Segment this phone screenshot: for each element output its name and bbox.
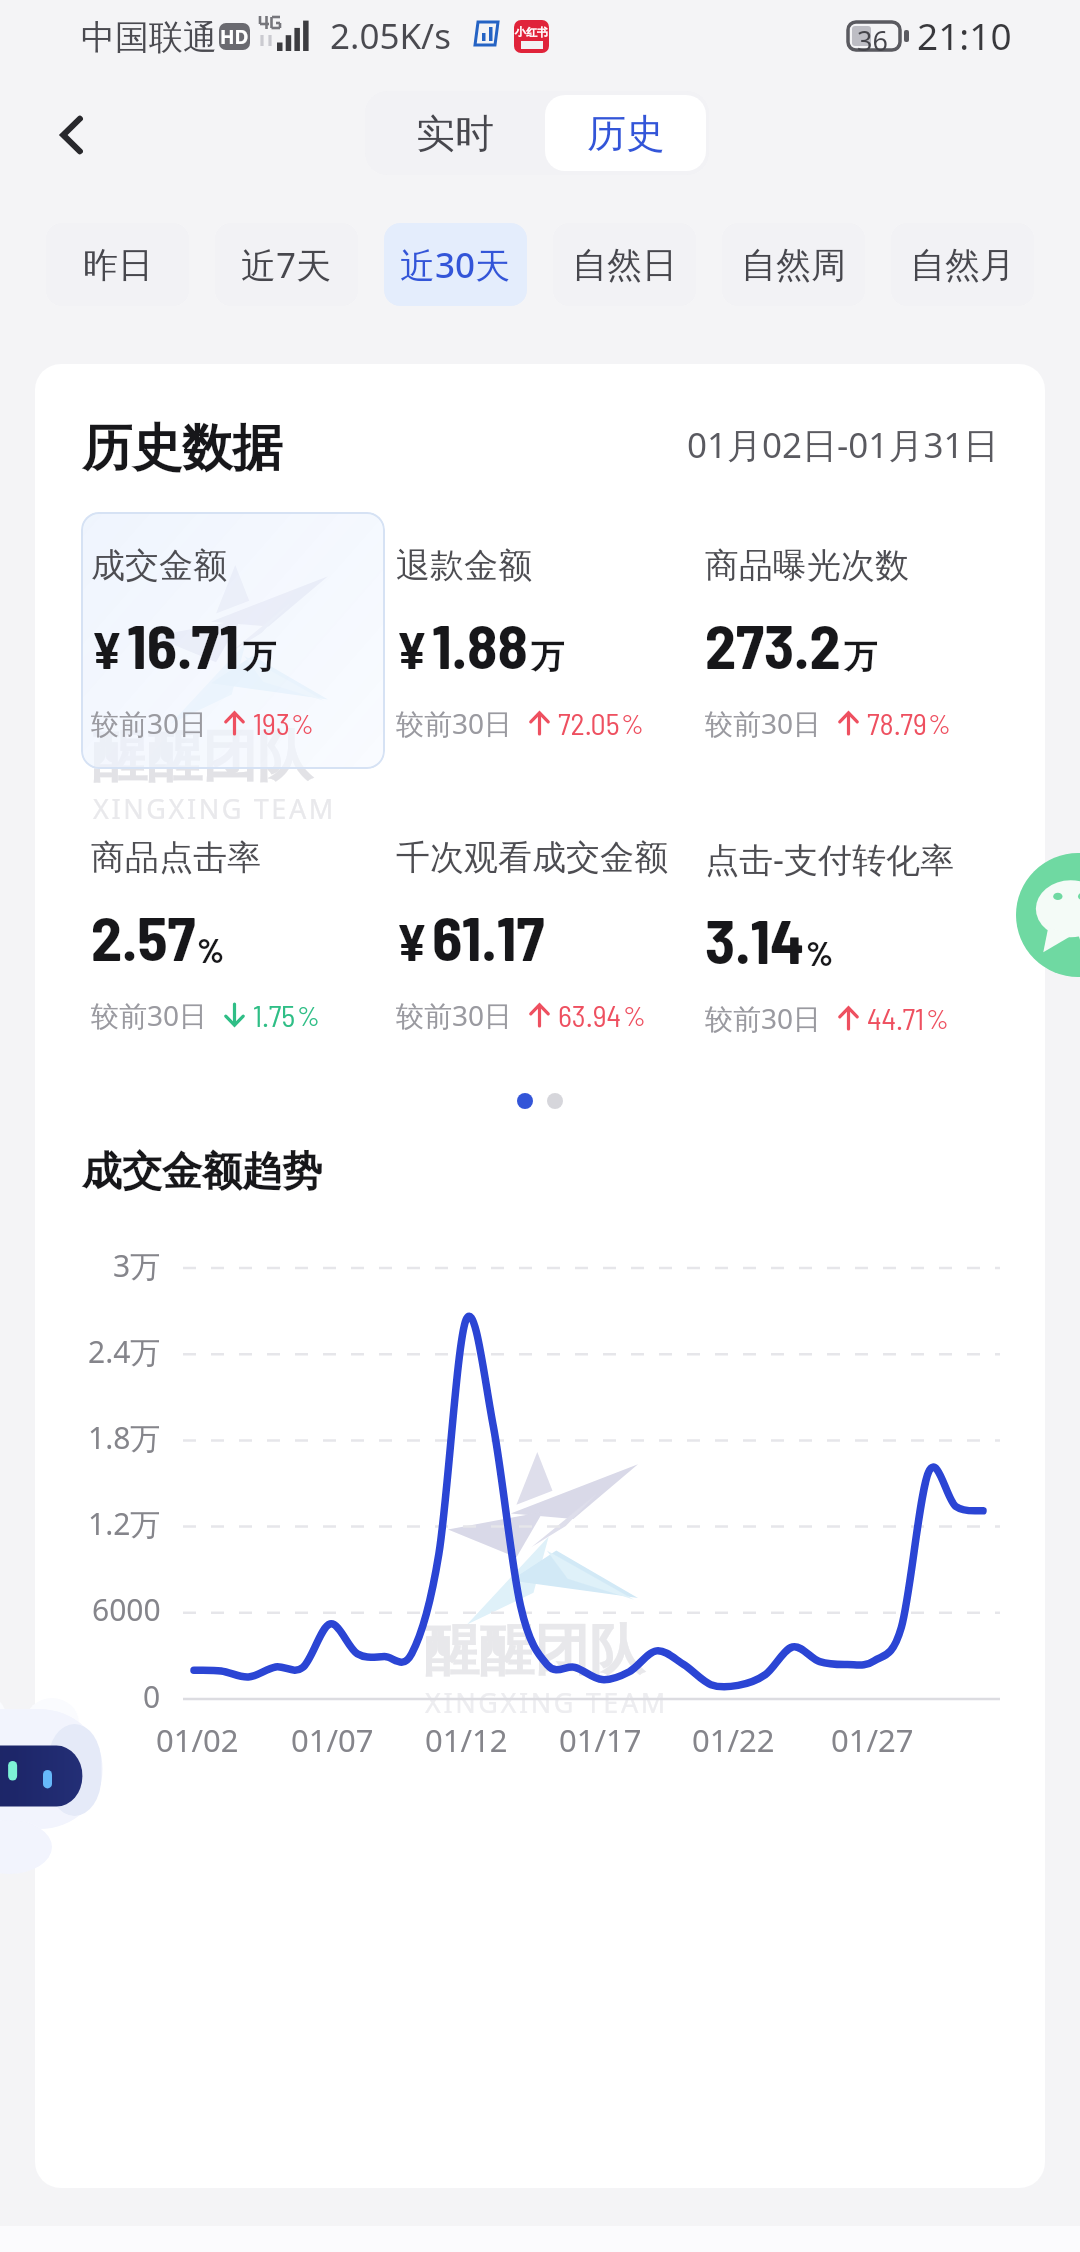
staticText: 01/12 <box>425 1719 508 1761</box>
staticText: 2.57 <box>91 899 196 973</box>
staticText: 1.2万 <box>88 1503 161 1544</box>
staticText: % <box>291 706 314 740</box>
staticText: 万 <box>531 636 564 678</box>
staticText: % <box>623 998 646 1032</box>
staticText: 2.4万 <box>88 1331 161 1372</box>
button[interactable] <box>81 512 385 769</box>
staticText: 较前30日 <box>396 704 513 742</box>
button[interactable]: 自然日 <box>553 223 696 306</box>
staticText: 0 <box>143 1676 161 1717</box>
staticText: 历史 <box>587 109 665 158</box>
staticText: 成交金额 <box>91 544 227 587</box>
button[interactable]: 自然周 <box>722 223 865 306</box>
staticText: 较前30日 <box>705 704 822 742</box>
staticText: 较前30日 <box>396 996 513 1034</box>
button[interactable]: 昨日 <box>46 223 189 306</box>
button[interactable]: 近7天 <box>215 223 358 306</box>
staticText: 昨日 <box>83 243 153 287</box>
staticText: 近7天 <box>241 241 332 289</box>
staticText: 醒醒团队 <box>424 1616 644 1685</box>
staticText: % <box>197 929 225 970</box>
staticText: 退款金额 <box>396 544 532 587</box>
button[interactable]: 点击-支付转化率 <box>705 836 1013 1037</box>
staticText: 醒醒团队 <box>92 722 312 791</box>
staticText: 21:10 <box>917 10 1012 60</box>
button[interactable]: 历史 <box>545 95 706 171</box>
staticText: 中国联通 <box>81 16 217 59</box>
staticText: ¥ <box>396 617 428 679</box>
button[interactable]: 商品点击率 <box>91 836 399 1034</box>
staticText: 历史数据 <box>82 417 282 480</box>
staticText: 3.14 <box>705 902 805 976</box>
staticText: 成交金额趋势 <box>82 1146 322 1196</box>
staticText: 193 <box>253 705 290 741</box>
staticText: 实时 <box>416 109 494 158</box>
staticText: 01月02日-01月31日 <box>687 421 999 469</box>
staticText: 36 <box>857 22 888 59</box>
button[interactable]: 商品曝光次数 <box>705 544 1013 742</box>
staticText: 近30天 <box>400 241 511 289</box>
staticText: 1.88 <box>432 607 528 681</box>
button[interactable]: 千次观看成交金额 <box>396 836 704 1034</box>
staticText: 63.94 <box>558 997 622 1033</box>
staticText: 2.05K/s <box>330 12 451 60</box>
staticText: 较前30日 <box>705 999 822 1037</box>
button[interactable]: 自然月 <box>891 223 1034 306</box>
button[interactable]: WeChat <box>1016 853 1080 977</box>
staticText: HD <box>220 24 249 50</box>
staticText: 较前30日 <box>91 704 208 742</box>
staticText: 01/07 <box>291 1719 374 1761</box>
staticText: 01/27 <box>831 1719 914 1761</box>
staticText: 44.71 <box>867 1000 925 1036</box>
staticText: XINGXING TEAM <box>93 790 336 827</box>
staticText: 01/22 <box>692 1719 775 1761</box>
staticText: % <box>806 932 834 973</box>
staticText: 1.8万 <box>88 1417 161 1458</box>
staticText: 16.71 <box>127 607 240 681</box>
button[interactable]: 退款金额 <box>396 544 704 742</box>
button[interactable]: 近30天 <box>384 223 527 306</box>
staticText: % <box>621 706 644 740</box>
staticText: ¥ <box>91 617 123 679</box>
staticText: 72.05 <box>558 705 620 741</box>
button[interactable]: 成交金额 <box>91 544 399 742</box>
staticText: 自然日 <box>572 243 677 287</box>
staticText: 商品点击率 <box>91 836 261 879</box>
staticText: 3万 <box>113 1245 161 1286</box>
staticText: 273.2 <box>705 607 841 681</box>
staticText: XINGXING TEAM <box>425 1684 668 1721</box>
staticText: % <box>926 1001 949 1035</box>
staticText: 78.79 <box>867 705 927 741</box>
staticText: 较前30日 <box>91 996 208 1034</box>
staticText: 小红书 <box>515 25 548 39</box>
button[interactable]: Back <box>40 103 104 167</box>
staticText: 01/02 <box>156 1719 239 1761</box>
staticText: 1.75 <box>253 997 296 1033</box>
staticText: 商品曝光次数 <box>705 544 909 587</box>
staticText: 自然月 <box>910 243 1015 287</box>
staticText: % <box>297 998 320 1032</box>
button[interactable]: 实时 <box>365 91 545 175</box>
staticText: 自然周 <box>741 243 846 287</box>
staticText: 万 <box>844 636 877 678</box>
staticText: 千次观看成交金额 <box>396 836 668 879</box>
staticText: % <box>928 706 951 740</box>
staticText: 点击-支付转化率 <box>705 836 954 882</box>
staticText: 01/17 <box>559 1719 642 1761</box>
staticText: ¥ <box>396 909 428 971</box>
staticText: 61.17 <box>432 899 545 973</box>
staticText: 6000 <box>92 1589 161 1630</box>
staticText: 万 <box>243 636 276 678</box>
